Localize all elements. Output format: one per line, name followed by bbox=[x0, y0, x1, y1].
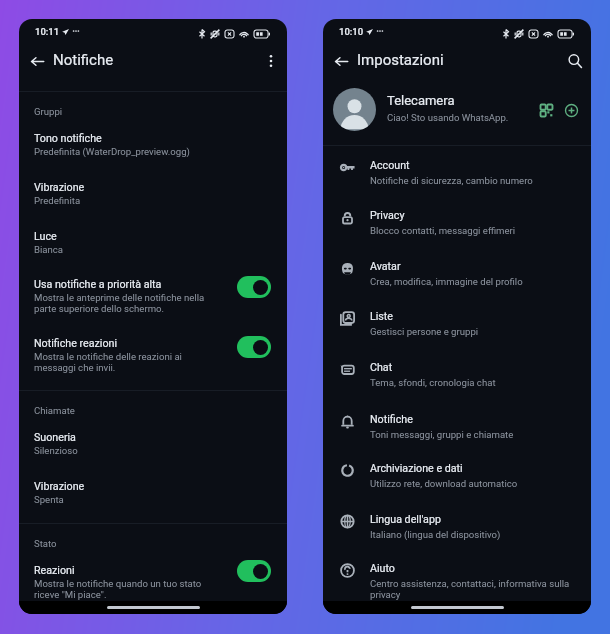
staticText: Predefinita bbox=[34, 195, 81, 206]
button[interactable]: Toggle bbox=[237, 560, 271, 582]
button[interactable] bbox=[323, 90, 591, 145]
staticText: Aiuto bbox=[370, 562, 395, 575]
staticText: Vibrazione bbox=[34, 181, 85, 194]
button[interactable] bbox=[323, 553, 591, 599]
staticText: Impostazioni bbox=[357, 51, 444, 69]
staticText: Account bbox=[370, 159, 410, 172]
staticText: Centro assistenza, contattaci, informati… bbox=[370, 578, 570, 600]
button[interactable]: Search bbox=[560, 46, 590, 76]
staticText: 10:10 bbox=[339, 26, 364, 37]
button[interactable] bbox=[323, 250, 591, 296]
staticText: Gestisci persone e gruppi bbox=[370, 326, 479, 337]
button[interactable] bbox=[19, 122, 287, 162]
staticText: Mostra le anteprime delle notifiche nell… bbox=[34, 292, 205, 314]
button[interactable]: Back bbox=[326, 46, 356, 76]
button[interactable] bbox=[19, 554, 287, 600]
staticText: Mostra le notifiche quando un tuo stato … bbox=[34, 578, 202, 600]
button[interactable] bbox=[19, 471, 287, 511]
staticText: Tono notifiche bbox=[34, 132, 102, 145]
staticText: Notifiche di sicurezza, cambio numero bbox=[370, 175, 533, 186]
button[interactable]: Toggle bbox=[237, 336, 271, 358]
staticText: Avatar bbox=[370, 260, 401, 273]
button[interactable] bbox=[19, 328, 287, 378]
button[interactable] bbox=[19, 268, 287, 318]
staticText: Italiano (lingua del dispositivo) bbox=[370, 529, 501, 540]
button[interactable] bbox=[323, 503, 591, 549]
staticText: Privacy bbox=[370, 209, 405, 222]
staticText: Lingua dell'app bbox=[370, 513, 441, 526]
button[interactable] bbox=[19, 220, 287, 260]
button[interactable] bbox=[323, 149, 591, 195]
button[interactable] bbox=[19, 421, 287, 461]
staticText: Chiamate bbox=[34, 405, 75, 416]
staticText: Chat bbox=[370, 361, 393, 374]
staticText: Notifiche reazioni bbox=[34, 337, 118, 350]
staticText: Spenta bbox=[34, 494, 64, 505]
staticText: Bianca bbox=[34, 244, 64, 255]
staticText: Crea, modifica, immagine del profilo bbox=[370, 276, 523, 287]
button[interactable] bbox=[323, 453, 591, 499]
button[interactable] bbox=[19, 171, 287, 211]
staticText: Notifiche bbox=[53, 51, 114, 69]
staticText: Notifiche bbox=[370, 413, 413, 426]
button[interactable]: More options bbox=[256, 46, 286, 76]
staticText: Suoneria bbox=[34, 431, 76, 444]
staticText: Gruppi bbox=[34, 106, 63, 117]
button[interactable] bbox=[323, 200, 591, 246]
staticText: Tema, sfondi, cronologia chat bbox=[370, 377, 496, 388]
button[interactable]: Toggle bbox=[237, 276, 271, 298]
staticText: Silenzioso bbox=[34, 445, 78, 456]
staticText: 10:11 bbox=[35, 26, 60, 37]
staticText: Predefinita (WaterDrop_preview.ogg) bbox=[34, 146, 190, 157]
staticText: Telecamera bbox=[387, 93, 455, 108]
button[interactable]: Add account bbox=[560, 99, 582, 121]
staticText: Reazioni bbox=[34, 564, 75, 577]
staticText: Mostra le notifiche delle reazioni ai me… bbox=[34, 351, 182, 373]
staticText: Blocco contatti, messaggi effimeri bbox=[370, 225, 516, 236]
staticText: Usa notifiche a priorità alta bbox=[34, 278, 162, 291]
staticText: Toni messaggi, gruppi e chiamate bbox=[370, 429, 514, 440]
button[interactable] bbox=[323, 403, 591, 449]
button[interactable]: Back bbox=[22, 46, 52, 76]
button[interactable] bbox=[323, 301, 591, 347]
button[interactable]: QR code bbox=[535, 99, 557, 121]
staticText: Ciao! Sto usando WhatsApp. bbox=[387, 112, 509, 123]
button[interactable] bbox=[323, 351, 591, 397]
staticText: Utilizzo rete, download automatico bbox=[370, 478, 518, 489]
staticText: Archiviazione e dati bbox=[370, 462, 463, 475]
staticText: Luce bbox=[34, 230, 57, 243]
staticText: Liste bbox=[370, 310, 394, 323]
staticText: Vibrazione bbox=[34, 480, 85, 493]
staticText: Stato bbox=[34, 538, 57, 549]
